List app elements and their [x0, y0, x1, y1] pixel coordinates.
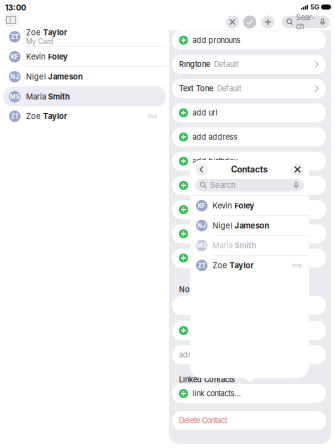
staticText: 5G: [310, 3, 319, 11]
staticText: ZT: [198, 262, 206, 269]
staticText: Ringtone: [179, 60, 210, 69]
staticText: Foley: [48, 52, 68, 61]
staticText: Maria: [212, 241, 234, 250]
staticText: me: [147, 112, 157, 120]
button[interactable]: KF: [3, 47, 165, 66]
staticText: add pronouns: [192, 36, 240, 45]
staticText: Search: [296, 13, 315, 31]
staticText: add to favourites: [179, 350, 237, 359]
staticText: Taylor: [43, 112, 67, 121]
button[interactable]: Cancel: [226, 15, 239, 28]
staticText: Nigel: [26, 72, 48, 81]
staticText: Text Tone: [179, 84, 213, 93]
staticText: MS: [10, 93, 20, 100]
button[interactable]: add address: [172, 127, 326, 146]
button[interactable]: add related name: [172, 200, 326, 219]
button[interactable]: ZT: [3, 27, 165, 46]
button[interactable]: Ringtone: [172, 55, 326, 74]
button[interactable]: add pronouns: [172, 31, 326, 50]
button[interactable]: MS: [190, 236, 309, 255]
staticText: Taylor: [43, 28, 67, 37]
button[interactable]: KF: [190, 196, 309, 215]
button[interactable]: ZT: [190, 256, 309, 275]
staticText: Kevin: [26, 52, 48, 61]
staticText: Nigel: [212, 221, 234, 230]
staticText: KF: [198, 202, 206, 209]
staticText: Kevin: [212, 201, 234, 210]
button[interactable]: MS: [3, 87, 165, 106]
button[interactable]: Delete Contact: [172, 411, 326, 430]
staticText: Search: [210, 181, 236, 190]
button[interactable]: add social profile: [172, 224, 326, 243]
button[interactable]: add url: [172, 103, 326, 122]
button[interactable]: Search: [282, 16, 330, 28]
button[interactable]: ZT: [3, 106, 165, 126]
staticText: Jameson: [48, 72, 83, 81]
staticText: add birthday: [192, 157, 237, 166]
button[interactable]: Close: [291, 163, 304, 176]
button[interactable]: add to favourites: [172, 345, 326, 364]
staticText: add url: [192, 108, 217, 117]
staticText: 13:00: [5, 3, 26, 12]
button[interactable]: add date: [172, 176, 326, 195]
staticText: Taylor: [229, 261, 253, 270]
staticText: Delete Contact: [179, 416, 227, 425]
button[interactable]: add instant message: [172, 248, 326, 267]
staticText: Zoe: [26, 112, 43, 121]
staticText: My Card: [26, 37, 53, 46]
staticText: MS: [197, 242, 207, 249]
staticText: add date: [192, 181, 223, 190]
button[interactable]: link contacts…: [172, 384, 326, 403]
staticText: Contacts: [231, 164, 268, 175]
button[interactable]: Done: [243, 15, 256, 28]
staticText: Default: [217, 84, 241, 93]
staticText: link contacts…: [192, 389, 240, 398]
button[interactable]: Add: [261, 15, 274, 28]
staticText: add instant message: [192, 253, 264, 262]
staticText: Zoe: [212, 261, 229, 270]
staticText: Foley: [234, 201, 254, 210]
staticText: Notes: [179, 285, 200, 294]
staticText: ZT: [11, 33, 19, 40]
staticText: Smith: [234, 241, 256, 250]
staticText: Maria: [26, 92, 48, 101]
button[interactable]: NJ: [190, 216, 309, 235]
button[interactable]: Text Tone: [172, 79, 326, 98]
staticText: add address: [192, 132, 237, 141]
staticText: Jameson: [234, 221, 269, 230]
staticText: me: [292, 261, 302, 269]
staticText: NJ: [197, 222, 206, 229]
staticText: add related name: [192, 205, 253, 214]
staticText: Zoe: [26, 28, 43, 37]
button[interactable]: add birthday: [172, 152, 326, 171]
staticText: Linked Contacts: [179, 375, 235, 384]
button[interactable]: add field: [172, 321, 326, 340]
staticText: KF: [11, 53, 19, 60]
staticText: Default: [214, 60, 238, 69]
button[interactable]: NJ: [3, 67, 165, 86]
button[interactable]: Back: [195, 163, 208, 176]
button[interactable]: Toggle Sidebar: [3, 12, 19, 28]
staticText: NJ: [10, 73, 19, 80]
staticText: ZT: [11, 112, 19, 120]
staticText: Smith: [48, 92, 70, 101]
staticText: add social profile: [192, 229, 253, 238]
